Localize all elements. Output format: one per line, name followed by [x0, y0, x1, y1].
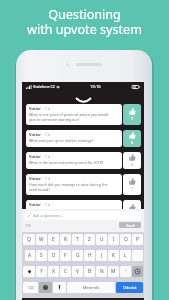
button[interactable]: Upvote [123, 104, 141, 125]
button[interactable]: Visitor [26, 130, 141, 147]
staticText: 123 [28, 285, 34, 290]
button[interactable]: L [120, 250, 131, 261]
staticText: Visitor [29, 132, 42, 137]
staticText: 1 [131, 186, 134, 191]
staticText: Z [88, 236, 91, 243]
staticText: K [112, 252, 115, 259]
staticText: W [39, 236, 44, 243]
button[interactable]: I [108, 234, 119, 245]
button[interactable]: Shift [23, 266, 35, 277]
staticText: J [101, 252, 103, 259]
button[interactable]: K [108, 250, 119, 261]
button[interactable]: 123 [23, 282, 38, 293]
staticText: 100 [25, 223, 31, 228]
staticText: G [76, 252, 80, 259]
staticText: F [64, 252, 67, 259]
button[interactable]: ´ [132, 250, 143, 261]
button[interactable]: Upvote [123, 152, 141, 169]
staticText: Vodafone CZ [33, 84, 55, 89]
button[interactable]: Send [119, 222, 141, 228]
button[interactable]: Backspace [132, 266, 143, 277]
staticText: Send [126, 223, 135, 228]
staticText: X [52, 268, 55, 275]
staticText: 3 [131, 162, 134, 167]
staticText: H [88, 252, 92, 259]
button[interactable]: V [72, 266, 83, 277]
staticText: What is one piece of practical advice yo… [29, 112, 109, 122]
button[interactable]: Upvote [123, 200, 141, 221]
button[interactable]: Visitor [26, 104, 141, 125]
staticText: 7 d [45, 106, 50, 111]
staticText: T [76, 236, 79, 243]
staticText: Visitor [29, 202, 42, 207]
staticText: M [111, 268, 116, 275]
staticText: U [100, 236, 104, 243]
staticText: 10:16 [90, 84, 101, 90]
staticText: C [64, 268, 68, 275]
staticText: R [64, 236, 67, 243]
staticText: Q [27, 236, 31, 243]
staticText: ´ [137, 253, 139, 258]
button[interactable]: " [120, 266, 131, 277]
button[interactable]: C [60, 266, 71, 277]
button[interactable]: Y [36, 266, 47, 277]
button[interactable]: Z [84, 234, 95, 245]
button[interactable]: D [48, 250, 59, 261]
button[interactable]: B [84, 266, 95, 277]
button[interactable]: Upvote [123, 174, 141, 195]
button[interactable]: Visitor [26, 152, 141, 169]
staticText: " [125, 269, 127, 274]
staticText: P [136, 236, 139, 243]
staticText: Mezerník [83, 285, 99, 290]
staticText: What is the most interesting trend for 2… [29, 160, 104, 165]
staticText: Visitor [29, 176, 42, 181]
staticText: Odeslat [123, 285, 137, 290]
staticText: How much did you manage to raise during … [29, 182, 108, 192]
staticText: Y [40, 268, 43, 275]
button[interactable]: Mezerník [67, 282, 115, 293]
button[interactable]: O [120, 234, 131, 245]
staticText: N [100, 268, 104, 275]
button[interactable]: Visitor [26, 174, 141, 195]
button[interactable]: W [36, 234, 47, 245]
button[interactable]: A [25, 250, 35, 261]
staticText: 7 d [45, 202, 50, 207]
button[interactable]: Ask a question... [27, 211, 139, 220]
button[interactable]: Dictate [53, 282, 66, 293]
button[interactable]: Visitor [26, 200, 141, 221]
staticText: Visitor [29, 106, 42, 111]
staticText: 7 d [45, 154, 50, 159]
button[interactable]: F [60, 250, 71, 261]
staticText: V [76, 268, 79, 275]
staticText: Ask a question... [33, 213, 63, 218]
staticText: 5 [131, 140, 134, 145]
button[interactable]: Q [23, 234, 35, 245]
button[interactable]: Upvote [123, 130, 141, 147]
button[interactable]: T [72, 234, 83, 245]
staticText: Visitor [29, 154, 42, 159]
button[interactable]: G [72, 250, 83, 261]
button[interactable]: H [84, 250, 95, 261]
staticText: 7 [131, 116, 134, 121]
button[interactable]: R [60, 234, 71, 245]
button[interactable]: J [96, 250, 107, 261]
staticText: S [40, 252, 43, 259]
staticText: L [124, 252, 127, 259]
staticText: Questioning with upvote system [27, 6, 142, 38]
staticText: E [52, 236, 55, 243]
button[interactable]: Change language [39, 282, 52, 293]
staticText: D [52, 252, 56, 259]
button[interactable]: P [132, 234, 143, 245]
button[interactable]: M [108, 266, 119, 277]
button[interactable]: E [48, 234, 59, 245]
staticText: A [28, 252, 32, 259]
staticText: What was your go to market strategy? [29, 138, 94, 143]
button[interactable]: X [48, 266, 59, 277]
button[interactable]: N [96, 266, 107, 277]
button[interactable]: U [96, 234, 107, 245]
button[interactable]: Odeslat [116, 282, 143, 293]
staticText: 7 d [45, 132, 50, 137]
staticText: B [88, 268, 92, 275]
button[interactable]: S [36, 250, 47, 261]
staticText: I [113, 236, 115, 243]
